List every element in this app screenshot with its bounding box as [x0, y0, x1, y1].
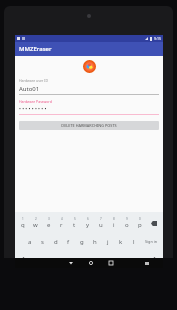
- staticText: p: [138, 221, 142, 229]
- button[interactable]: Sign in: [140, 233, 162, 250]
- staticText: 4: [61, 217, 63, 221]
- button[interactable]: 0: [133, 214, 146, 232]
- button[interactable]: a: [23, 233, 36, 250]
- button[interactable]: f: [62, 233, 75, 250]
- staticText: !: [127, 256, 129, 264]
- staticText: 2: [35, 217, 37, 221]
- button[interactable]: v: [69, 251, 82, 268]
- staticText: a: [28, 238, 32, 246]
- staticText: l: [133, 238, 135, 246]
- staticText: 7: [100, 217, 102, 221]
- staticText: 9:15: [154, 36, 161, 41]
- staticText: x: [48, 256, 52, 264]
- button[interactable]: !: [121, 251, 134, 268]
- staticText: 9: [126, 217, 128, 221]
- staticText: z: [35, 256, 38, 264]
- staticText: • • • • • • • • •: [19, 106, 47, 113]
- button[interactable]: x: [43, 251, 56, 268]
- staticText: Auto01: [19, 85, 40, 93]
- staticText: y: [86, 221, 90, 229]
- button[interactable]: Recents: [101, 258, 121, 268]
- button[interactable]: c: [56, 251, 69, 268]
- button[interactable]: b: [82, 251, 95, 268]
- staticText: b: [87, 256, 91, 264]
- staticText: 5: [74, 217, 76, 221]
- staticText: m: [112, 256, 118, 264]
- button[interactable]: 2: [29, 214, 42, 232]
- staticText: v: [74, 256, 78, 264]
- staticText: Sign in: [145, 239, 158, 244]
- staticText: q: [21, 221, 25, 229]
- staticText: 1: [22, 217, 24, 221]
- staticText: g: [80, 238, 84, 246]
- button[interactable]: m: [108, 251, 121, 268]
- button[interactable]: 7: [94, 214, 107, 232]
- staticText: 0: [139, 217, 141, 221]
- button[interactable]: g: [75, 233, 88, 250]
- button[interactable]: k: [114, 233, 127, 250]
- staticText: h: [93, 238, 97, 246]
- button[interactable]: ?: [134, 251, 147, 268]
- staticText: k: [119, 238, 123, 246]
- staticText: w: [33, 221, 38, 229]
- staticText: f: [67, 238, 70, 246]
- staticText: t: [73, 221, 76, 229]
- button[interactable]: 9: [120, 214, 133, 232]
- button[interactable]: 1: [16, 214, 29, 232]
- staticText: u: [99, 221, 103, 229]
- staticText: ?: [139, 256, 142, 264]
- staticText: o: [125, 221, 129, 229]
- staticText: 6: [87, 217, 89, 221]
- staticText: r: [60, 221, 63, 229]
- button[interactable]: Keyboard: [137, 258, 157, 268]
- button[interactable]: DELETE HARMARCHING POSTS: [19, 121, 159, 130]
- staticText: e: [47, 221, 51, 229]
- button[interactable]: Back: [61, 258, 81, 268]
- staticText: c: [61, 256, 64, 264]
- button[interactable]: Home: [81, 258, 101, 268]
- button[interactable]: Backspace: [146, 214, 162, 232]
- button[interactable]: s: [36, 233, 49, 250]
- button[interactable]: 4: [55, 214, 68, 232]
- button[interactable]: d: [49, 233, 62, 250]
- button[interactable]: 3: [42, 214, 55, 232]
- button[interactable]: 8: [107, 214, 120, 232]
- staticText: j: [107, 238, 109, 246]
- button[interactable]: 6: [81, 214, 94, 232]
- button[interactable]: n: [95, 251, 108, 268]
- staticText: 8: [113, 217, 115, 221]
- button[interactable]: h: [88, 233, 101, 250]
- staticText: s: [41, 238, 44, 246]
- staticText: i: [113, 221, 115, 229]
- button[interactable]: Shift: [16, 251, 30, 268]
- staticText: 3: [48, 217, 50, 221]
- staticText: Hardware user ID: [19, 78, 48, 83]
- staticText: DELETE HARMARCHING POSTS: [61, 123, 117, 128]
- staticText: n: [100, 256, 104, 264]
- button[interactable]: Shift: [147, 251, 162, 268]
- button[interactable]: j: [101, 233, 114, 250]
- staticText: MMZEraser: [19, 45, 52, 53]
- button[interactable]: l: [127, 233, 140, 250]
- button[interactable]: 5: [68, 214, 81, 232]
- staticText: d: [54, 238, 58, 246]
- button[interactable]: z: [30, 251, 43, 268]
- staticText: Hardware Password: [19, 99, 52, 104]
